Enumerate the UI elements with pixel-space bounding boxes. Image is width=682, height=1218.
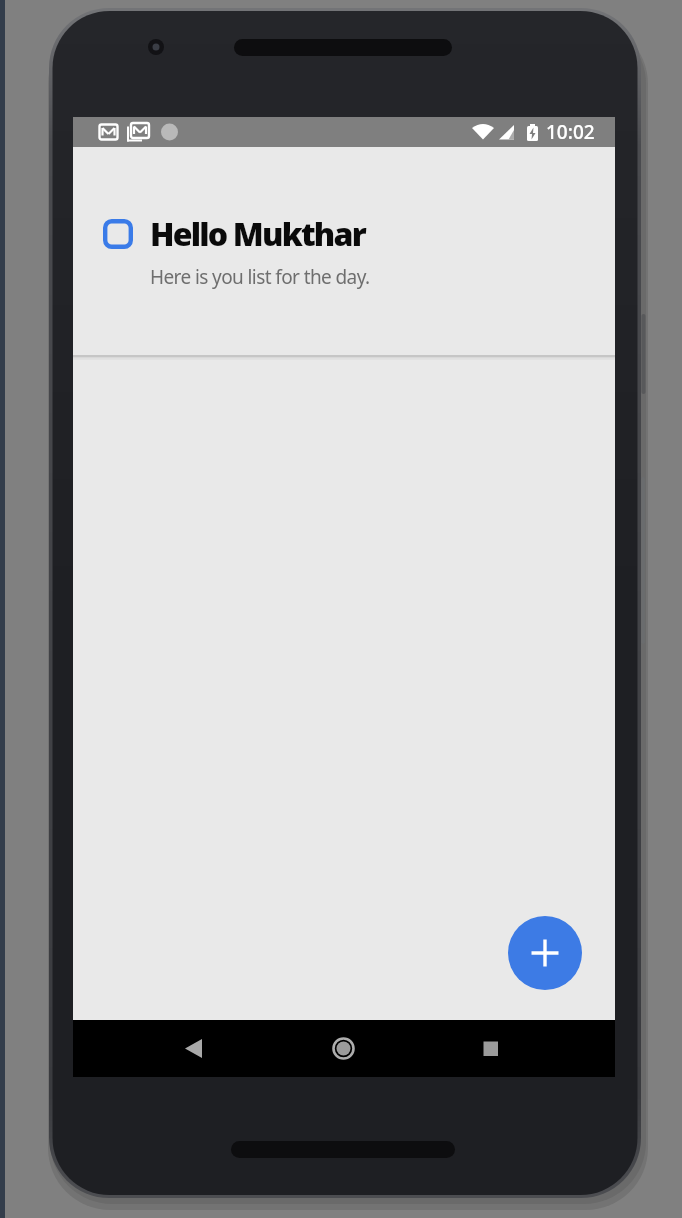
staticText: Here is you list for the day.	[150, 264, 370, 290]
button[interactable]	[508, 916, 582, 990]
button[interactable]	[473, 1031, 508, 1066]
staticText: 10:02	[546, 119, 595, 145]
button[interactable]	[176, 1031, 211, 1066]
staticText: Hello Mukthar	[150, 212, 365, 256]
button[interactable]	[326, 1031, 361, 1066]
button[interactable]	[103, 219, 133, 249]
